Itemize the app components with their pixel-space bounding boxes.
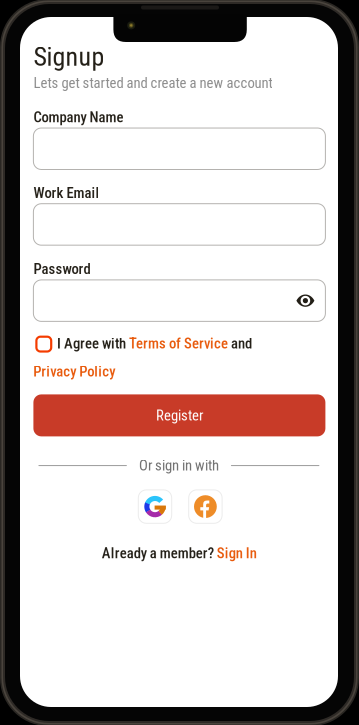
staticText: Or sign in with — [139, 457, 219, 474]
button[interactable]: Sign in with Google — [138, 490, 172, 523]
button[interactable]: I Agree with — [33, 335, 325, 381]
staticText: I Agree with — [57, 335, 129, 352]
staticText: Terms of Service — [129, 335, 228, 352]
staticText: Work Email — [33, 184, 99, 201]
staticText: Register — [156, 407, 203, 424]
staticText: Already a member? — [102, 545, 217, 562]
staticText: Lets get started and create a new accoun… — [33, 74, 272, 91]
staticText: and — [228, 335, 252, 352]
button[interactable]: Sign In — [217, 545, 257, 562]
button[interactable]: Show password — [296, 294, 314, 308]
button[interactable]: Register — [33, 394, 325, 436]
staticText: Company Name — [33, 109, 123, 126]
staticText: Privacy Policy — [33, 363, 115, 380]
staticText: Signup — [33, 42, 104, 72]
staticText: Password — [33, 260, 90, 278]
button[interactable]: Sign in with Facebook — [189, 490, 222, 523]
staticText: Sign In — [217, 545, 257, 562]
